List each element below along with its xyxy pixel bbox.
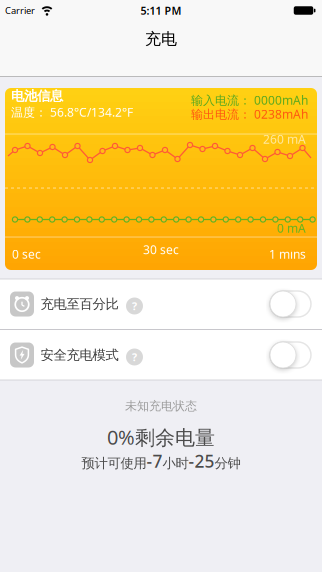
button[interactable]: 安全充电模式 [0,330,322,380]
staticText: 0 sec [12,246,41,262]
staticText: 电池信息 [11,88,63,104]
button[interactable]: Help [126,348,143,365]
staticText: 260 mA [263,131,306,147]
staticText: 温度： 56.8°C/134.2°F [11,104,133,120]
button[interactable]: 充电至百分比 [0,279,322,329]
button[interactable]: Help [126,297,143,314]
staticText: 充电至百分比 [40,296,118,312]
button[interactable]: 充电至百分比 [270,291,311,317]
staticText: Carrier [5,4,35,17]
staticText: 小时 [162,455,188,471]
staticText: 5:11 PM [140,3,181,18]
staticText: 安全充电模式 [40,347,118,363]
staticText: 输出电流： 0238mAh [191,106,308,122]
staticText: ? [132,299,137,313]
staticText: 30 sec [143,241,179,257]
staticText: -7 [146,449,162,472]
staticText: 0 mA [277,220,306,236]
staticText: 0%剩余电量 [107,424,215,450]
button[interactable]: 安全充电模式 [270,342,311,368]
staticText: -25 [188,449,214,472]
staticText: 未知充电状态 [125,399,197,413]
staticText: 1 mins [269,246,306,262]
staticText: ? [132,350,137,364]
staticText: 输入电流： 0000mAh [191,92,308,108]
staticText: 分钟 [214,455,240,471]
staticText: 充电 [145,29,177,49]
staticText: 预计可使用 [81,455,146,471]
